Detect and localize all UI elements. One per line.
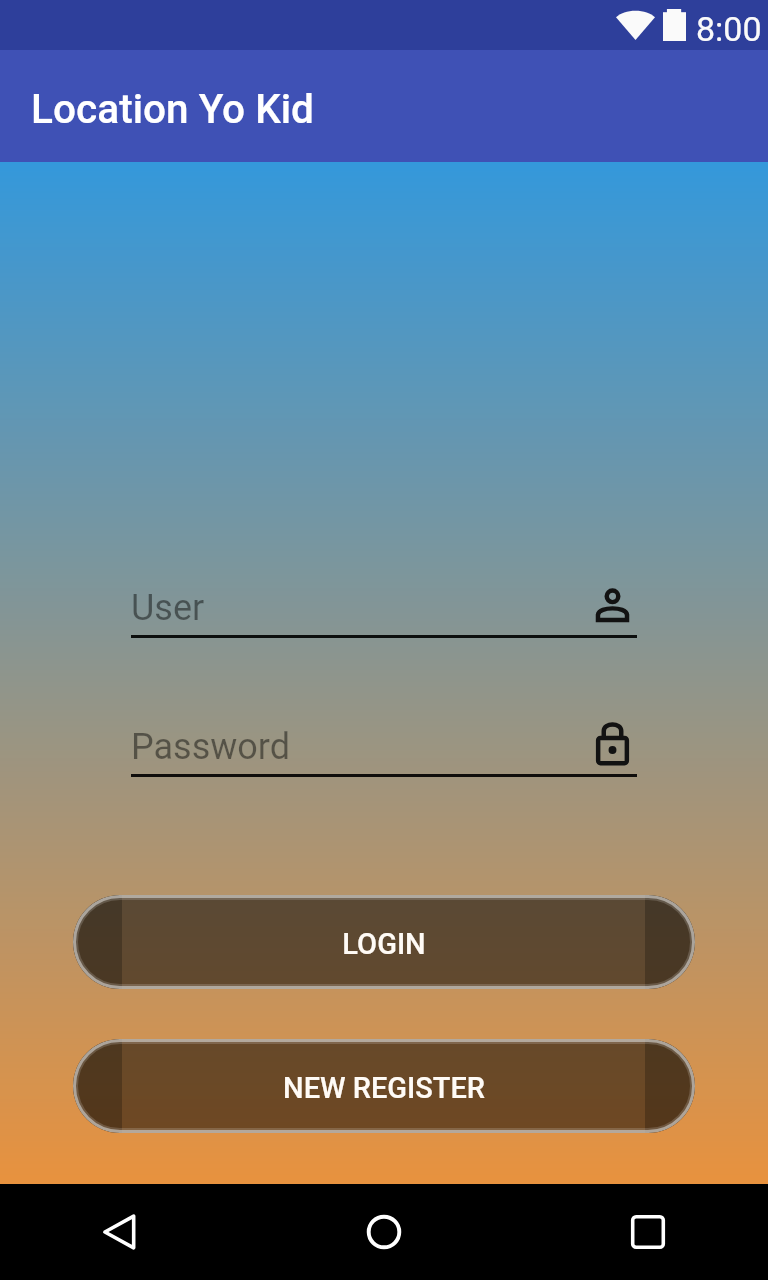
- button[interactable]: Home: [344, 1192, 424, 1272]
- button[interactable]: NEW REGISTER: [73, 1039, 695, 1133]
- staticText: 8:00: [696, 9, 762, 49]
- button[interactable]: Password: [584, 718, 640, 768]
- button[interactable]: Recent apps: [608, 1192, 688, 1272]
- staticText: Location Yo Kid: [31, 85, 314, 132]
- staticText: User: [131, 587, 205, 629]
- button[interactable]: LOGIN: [73, 895, 695, 989]
- staticText: Password: [131, 726, 291, 768]
- button[interactable]: Back: [80, 1192, 160, 1272]
- button[interactable]: [131, 574, 637, 642]
- button[interactable]: [131, 713, 637, 781]
- staticText: LOGIN: [342, 927, 426, 961]
- staticText: NEW REGISTER: [283, 1071, 485, 1105]
- button[interactable]: User account: [584, 586, 640, 624]
